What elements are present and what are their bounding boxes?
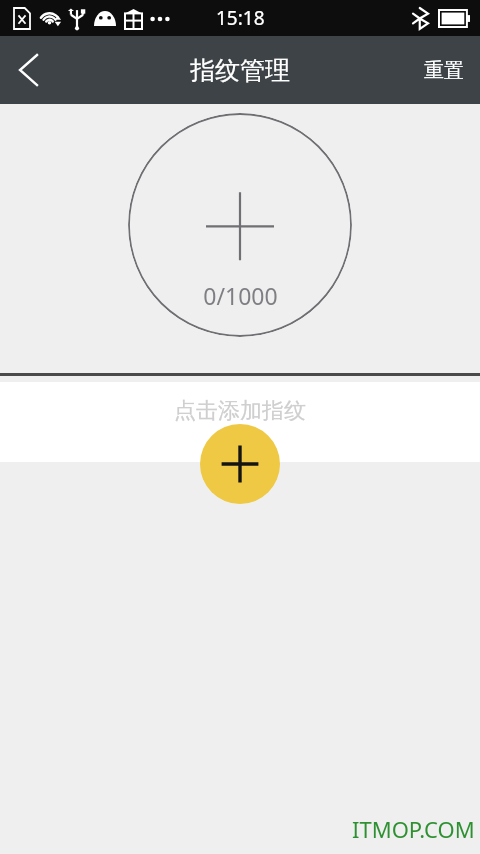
staticText: 点击添加指纹 <box>174 397 306 425</box>
staticText: 15:18 <box>216 5 265 31</box>
button[interactable]: Add fingerprint area <box>128 113 352 337</box>
button[interactable]: Back <box>0 42 56 98</box>
staticText: 0/1000 <box>203 280 278 311</box>
button[interactable]: Add fingerprint <box>200 424 280 504</box>
staticText: 重置 <box>424 58 464 83</box>
button[interactable] <box>0 382 480 462</box>
staticText: 指纹管理 <box>190 55 290 86</box>
staticText: ITMOP.COM <box>352 814 475 844</box>
button[interactable]: 重置 <box>408 44 480 97</box>
